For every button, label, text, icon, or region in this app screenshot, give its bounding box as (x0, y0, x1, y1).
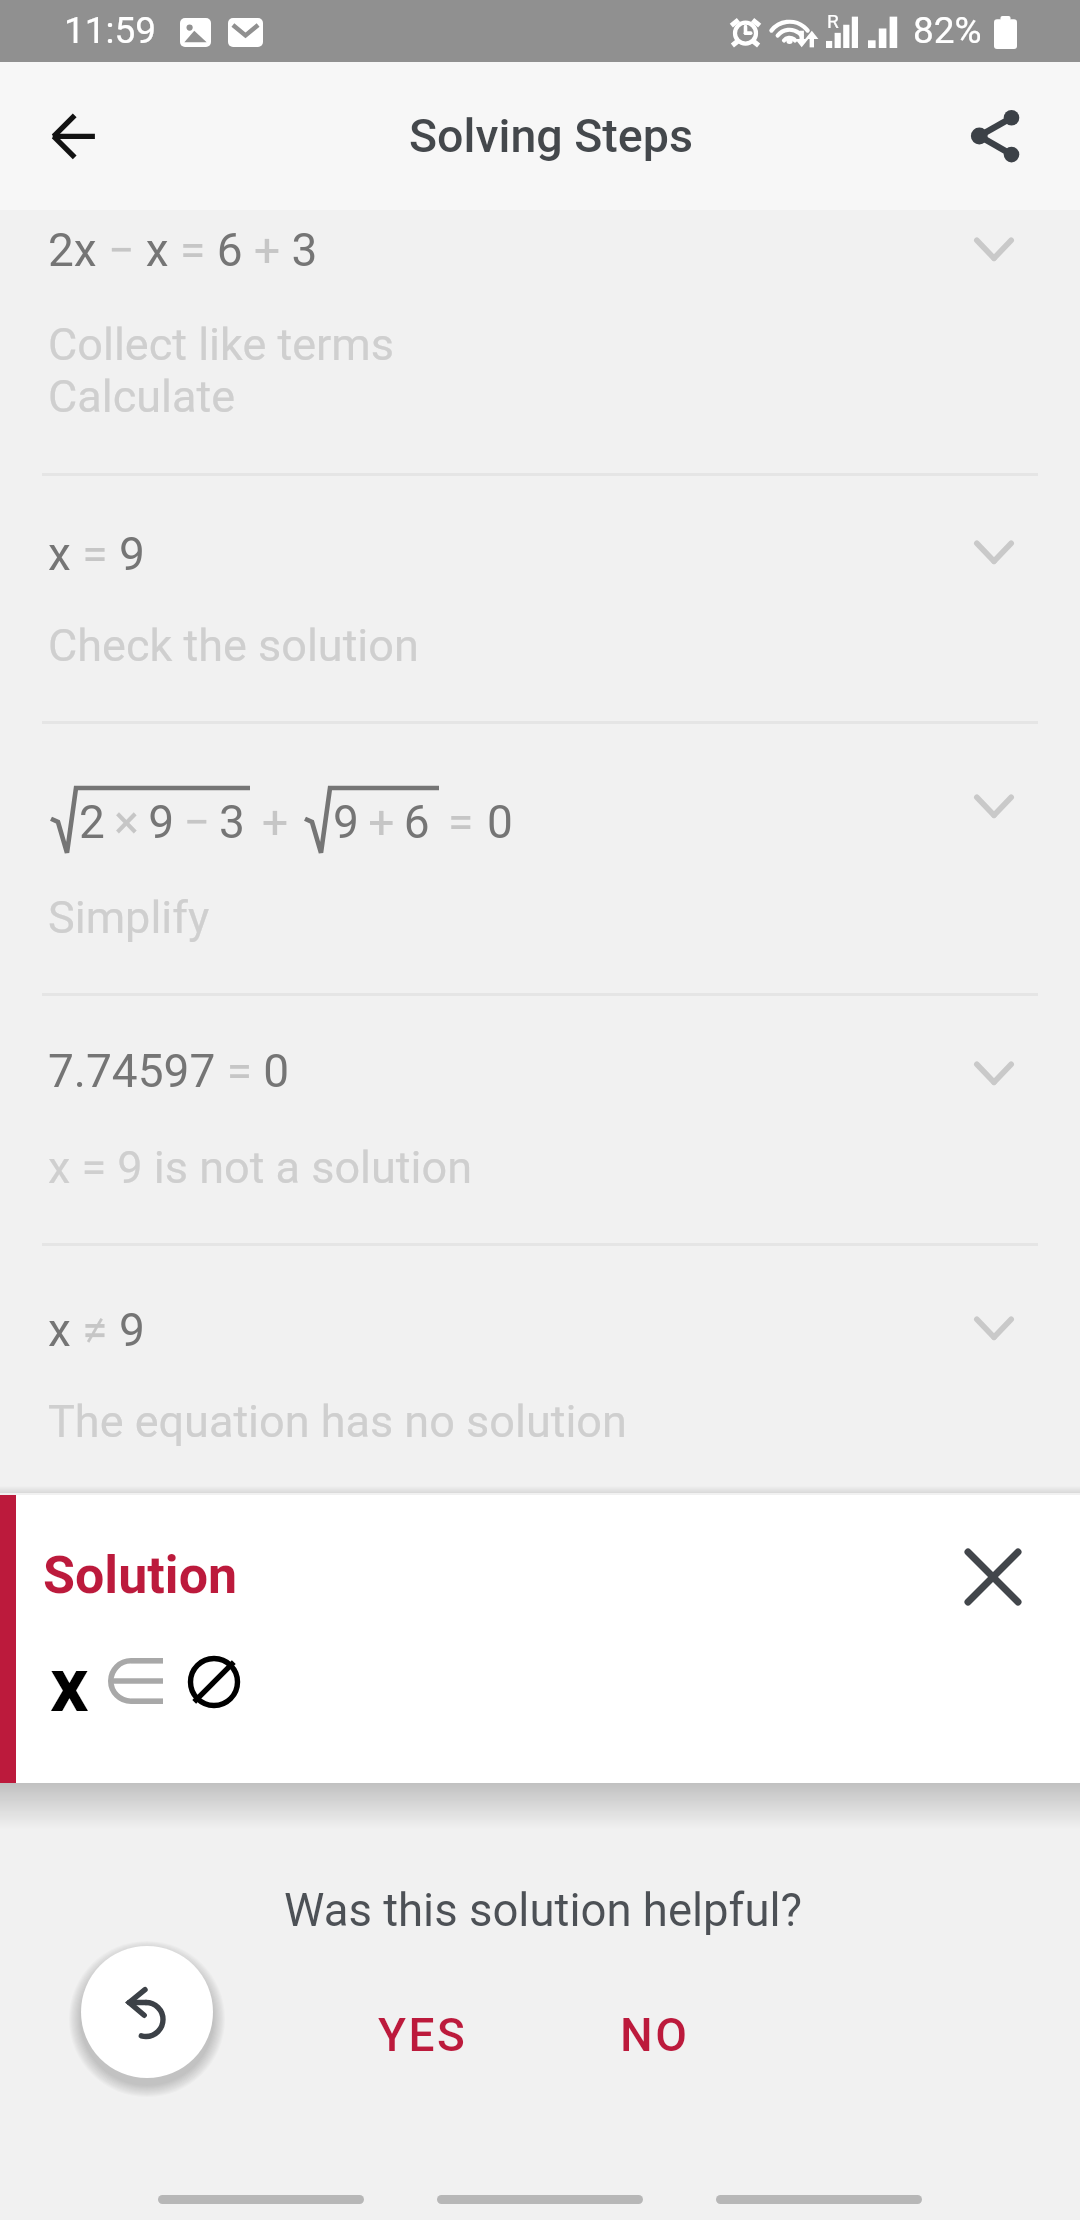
staticText: 11:59 (64, 9, 157, 52)
staticText: 0 (487, 795, 513, 849)
staticText: 2x − x = 6 + 3 (48, 223, 318, 277)
staticText: YES (378, 2008, 468, 2062)
button[interactable]: NO (596, 1996, 714, 2074)
staticText: 9 + 6 (333, 795, 430, 849)
staticText: Was this solution helpful? (284, 1884, 803, 1937)
button[interactable]: Share (947, 88, 1043, 184)
staticText: 2 × 9 − 3 (79, 795, 245, 849)
staticText: 82% (913, 9, 982, 52)
staticText: + (262, 795, 289, 849)
staticText: Collect like terms (48, 318, 394, 371)
button[interactable]: Back (716, 2195, 922, 2204)
button[interactable]: Undo (81, 1946, 213, 2078)
button[interactable]: Expand step (946, 503, 1042, 599)
staticText: R (827, 10, 839, 32)
staticText: Solution (43, 1545, 238, 1606)
staticText: 7.74597 = 0 (48, 1044, 290, 1098)
staticText: The equation has no solution (48, 1395, 627, 1448)
staticText: x = 9 (48, 527, 145, 581)
staticText: x = 9 is not a solution (48, 1141, 472, 1194)
staticText: x (50, 1640, 89, 1729)
button[interactable]: Expand step (946, 1279, 1042, 1375)
button[interactable]: YES (354, 1996, 492, 2074)
button[interactable]: Expand step (946, 1024, 1042, 1120)
staticText: Solving Steps (409, 109, 693, 163)
button[interactable]: Close (951, 1535, 1035, 1619)
button[interactable]: Home (437, 2195, 643, 2204)
button[interactable]: Back (25, 88, 121, 184)
button[interactable]: Expand step (946, 200, 1042, 296)
staticText: Check the solution (48, 619, 419, 672)
staticText: x ≠ 9 (48, 1303, 145, 1357)
button[interactable]: Expand step (946, 757, 1042, 853)
staticText: Simplify (48, 891, 210, 944)
staticText: NO (620, 2008, 690, 2062)
staticText: = (448, 795, 474, 849)
button[interactable]: Recents (158, 2195, 364, 2204)
staticText: Calculate (48, 370, 236, 423)
